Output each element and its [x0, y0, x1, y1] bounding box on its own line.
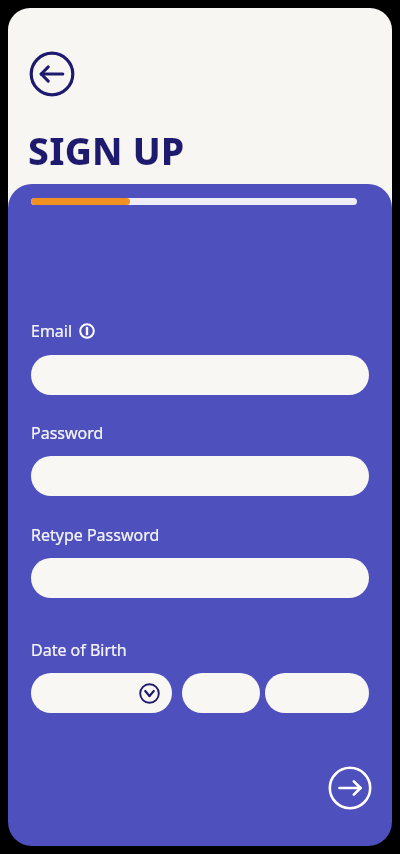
button[interactable]: Email info — [79, 323, 95, 339]
staticText: Email — [31, 320, 73, 342]
staticText: Retype Password — [31, 524, 160, 546]
button[interactable] — [31, 673, 172, 713]
button[interactable]: Next — [328, 766, 372, 810]
button[interactable] — [31, 355, 369, 395]
button[interactable] — [31, 558, 369, 598]
staticText: SIGN UP — [28, 125, 185, 175]
button[interactable]: Back — [29, 51, 75, 97]
staticText: Date of Birth — [31, 639, 127, 661]
button[interactable] — [265, 673, 369, 713]
staticText: Password — [31, 422, 104, 444]
button[interactable] — [31, 456, 369, 496]
button[interactable] — [182, 673, 260, 713]
